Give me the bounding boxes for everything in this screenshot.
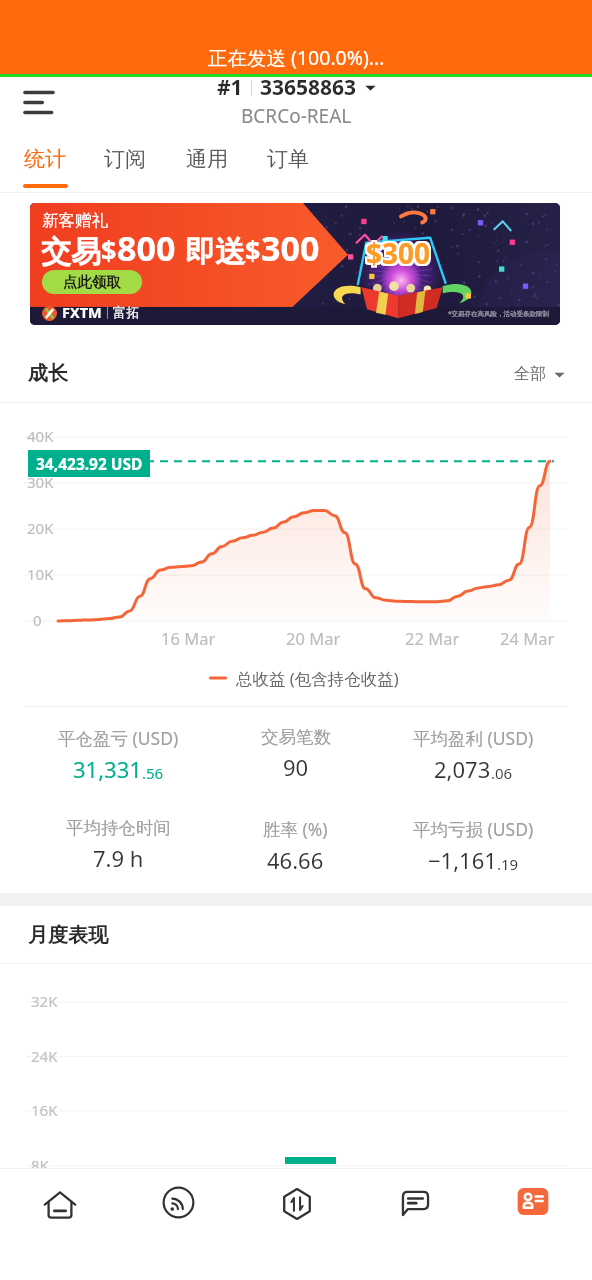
staticText: $ — [101, 232, 117, 269]
staticText: 30K — [27, 472, 54, 492]
button[interactable]: Home — [0, 1169, 119, 1280]
staticText: 34,423.92 USD — [36, 453, 143, 474]
button[interactable]: 平仓盈亏 (USD) — [20, 726, 217, 814]
staticText: 31,331 — [73, 754, 142, 784]
button[interactable]: Menu — [11, 75, 65, 129]
staticText: 平均持仓时间 — [66, 817, 171, 839]
staticText: 7.9 h — [93, 843, 144, 873]
staticText: 24 Mar — [500, 627, 555, 649]
staticText: .19 — [497, 854, 519, 874]
staticText: 总收益 (包含持仓收益) — [236, 667, 399, 690]
button[interactable]: 订阅 — [88, 136, 165, 192]
button[interactable]: 交易笔数 — [197, 726, 394, 814]
staticText: #1 — [217, 73, 243, 102]
staticText: 平均亏损 (USD) — [413, 817, 534, 841]
staticText: 即送 — [185, 233, 245, 271]
staticText: 胜率 (%) — [263, 817, 328, 841]
staticText: 16 Mar — [161, 627, 216, 649]
staticText: 800 — [117, 225, 176, 271]
staticText: 平仓盈亏 (USD) — [58, 726, 179, 750]
staticText: 8K — [31, 1155, 49, 1175]
staticText: 订阅 — [104, 146, 146, 172]
staticText: BCRCo-REAL — [241, 103, 352, 129]
button[interactable]: Trade — [238, 1169, 356, 1280]
button[interactable]: Profile — [474, 1169, 592, 1280]
button[interactable]: 平均持仓时间 — [20, 817, 217, 905]
button[interactable]: Signals — [119, 1169, 238, 1280]
staticText: 24K — [31, 1046, 58, 1066]
button[interactable]: 通用 — [170, 136, 247, 192]
staticText: $300 — [368, 234, 433, 272]
staticText: 交易笔数 — [261, 726, 331, 748]
staticText: 正在发送 (100.0%)... — [208, 44, 385, 71]
staticText: 交易 — [41, 233, 101, 271]
staticText: 月度表现 — [28, 923, 108, 948]
staticText: 0 — [33, 610, 42, 630]
staticText: 90 — [283, 752, 309, 782]
staticText: 平均盈利 (USD) — [413, 726, 534, 750]
staticText: 全部 — [514, 364, 546, 384]
staticText: 300 — [261, 225, 320, 271]
button[interactable]: 平均亏损 (USD) — [375, 817, 572, 905]
staticText: 成长 — [28, 361, 68, 386]
staticText: 2,073 — [434, 754, 491, 784]
staticText: 20 Mar — [286, 627, 341, 649]
staticText: 新客赠礼 — [42, 210, 108, 231]
staticText: 通用 — [186, 146, 228, 172]
staticText: $300 — [368, 236, 433, 274]
staticText: $300 — [364, 236, 429, 274]
staticText: 16K — [31, 1100, 58, 1120]
staticText: .56 — [142, 763, 164, 783]
staticText: $300 — [368, 232, 433, 270]
button[interactable]: 平均盈利 (USD) — [375, 726, 572, 814]
staticText: $300 — [366, 234, 431, 272]
staticText: 40K — [27, 426, 54, 446]
button[interactable]: 订单 — [251, 136, 328, 192]
staticText: 33658863 — [260, 73, 357, 102]
staticText: $300 — [366, 232, 431, 270]
button[interactable]: Promotion banner — [30, 203, 560, 325]
staticText: −1,161 — [428, 845, 497, 875]
staticText: $300 — [364, 234, 429, 272]
staticText: 统计 — [24, 146, 66, 172]
staticText: 22 Mar — [405, 627, 460, 649]
staticText: $300 — [366, 236, 431, 274]
staticText: FXTM — [62, 302, 102, 322]
staticText: 32K — [31, 991, 58, 1011]
button[interactable]: 胜率 (%) — [197, 817, 394, 905]
staticText: *交易存在高风险，活动受条款限制 — [448, 309, 550, 318]
staticText: 富拓 — [113, 304, 140, 321]
staticText: 10K — [27, 564, 54, 584]
staticText: .06 — [491, 763, 513, 783]
staticText: 订单 — [267, 146, 309, 172]
button[interactable]: Chat — [356, 1169, 474, 1280]
staticText: $300 — [364, 232, 429, 270]
button[interactable]: 点此领取 — [42, 270, 142, 294]
button[interactable]: 统计 — [8, 136, 85, 192]
staticText: 46.66 — [267, 845, 324, 875]
staticText: 点此领取 — [63, 273, 121, 291]
button[interactable]: 全部 — [509, 359, 570, 389]
staticText: 20K — [27, 518, 54, 538]
staticText: $ — [245, 232, 261, 269]
button[interactable]: #1 — [217, 73, 376, 129]
